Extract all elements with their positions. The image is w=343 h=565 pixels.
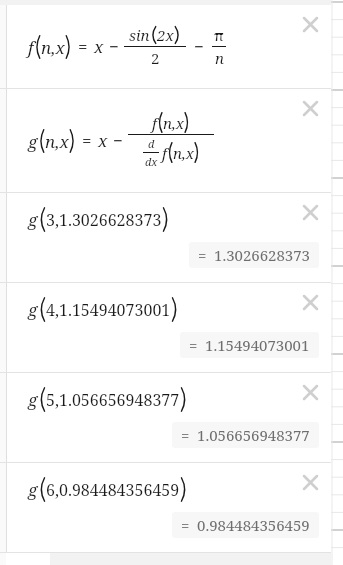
staticText: g <box>28 208 38 231</box>
staticText: n,x <box>41 36 65 59</box>
staticText: − <box>194 35 204 58</box>
staticText: sin <box>129 25 150 45</box>
button[interactable]: g <box>6 373 331 462</box>
button[interactable]: Delete expression <box>293 375 327 409</box>
staticText: 0.984484356459 <box>197 515 310 535</box>
staticText: x <box>98 129 108 152</box>
staticText: x <box>94 35 104 58</box>
staticText: 1.15494073001 <box>205 335 310 355</box>
button[interactable]: Delete expression <box>293 91 327 125</box>
button[interactable]: Delete expression <box>293 7 327 41</box>
button[interactable]: Delete expression <box>293 465 327 499</box>
staticText: = <box>78 35 88 58</box>
staticText: d <box>148 136 155 151</box>
staticText: 4,1.15494073001 <box>46 299 171 321</box>
staticText: = <box>189 335 198 355</box>
button[interactable]: f <box>6 5 331 88</box>
staticText: dx <box>145 154 158 169</box>
staticText: f <box>162 143 167 163</box>
staticText: n,x <box>173 143 194 163</box>
staticText: 2 <box>151 48 160 68</box>
button[interactable]: g <box>6 89 331 192</box>
button[interactable]: Delete expression <box>293 285 327 319</box>
button[interactable]: = <box>172 512 319 538</box>
staticText: − <box>109 35 119 58</box>
staticText: f <box>28 36 34 59</box>
staticText: g <box>28 298 38 321</box>
staticText: = <box>198 245 207 265</box>
staticText: f <box>152 113 157 133</box>
staticText: = <box>181 425 190 445</box>
button[interactable]: = <box>172 422 319 448</box>
staticText: g <box>28 478 38 501</box>
button[interactable]: g <box>6 463 331 552</box>
staticText: g <box>28 130 38 153</box>
staticText: = <box>82 129 92 152</box>
staticText: 6,0.984484356459 <box>46 479 180 501</box>
staticText: 3,1.3026628373 <box>46 209 162 231</box>
staticText: π <box>214 25 224 45</box>
button[interactable]: = <box>180 332 319 358</box>
staticText: g <box>28 388 38 411</box>
staticText: 2x <box>157 25 174 45</box>
staticText: n,x <box>45 130 69 153</box>
button[interactable]: g <box>6 193 331 282</box>
staticText: = <box>181 515 190 535</box>
staticText: n <box>215 48 224 68</box>
staticText: − <box>113 129 123 152</box>
staticText: 1.056656948377 <box>197 425 310 445</box>
staticText: 1.3026628373 <box>214 245 310 265</box>
button[interactable]: = <box>189 242 319 268</box>
button[interactable]: g <box>6 283 331 372</box>
button[interactable]: Delete expression <box>293 195 327 229</box>
staticText: 5,1.056656948377 <box>46 389 180 411</box>
staticText: n,x <box>163 113 184 133</box>
